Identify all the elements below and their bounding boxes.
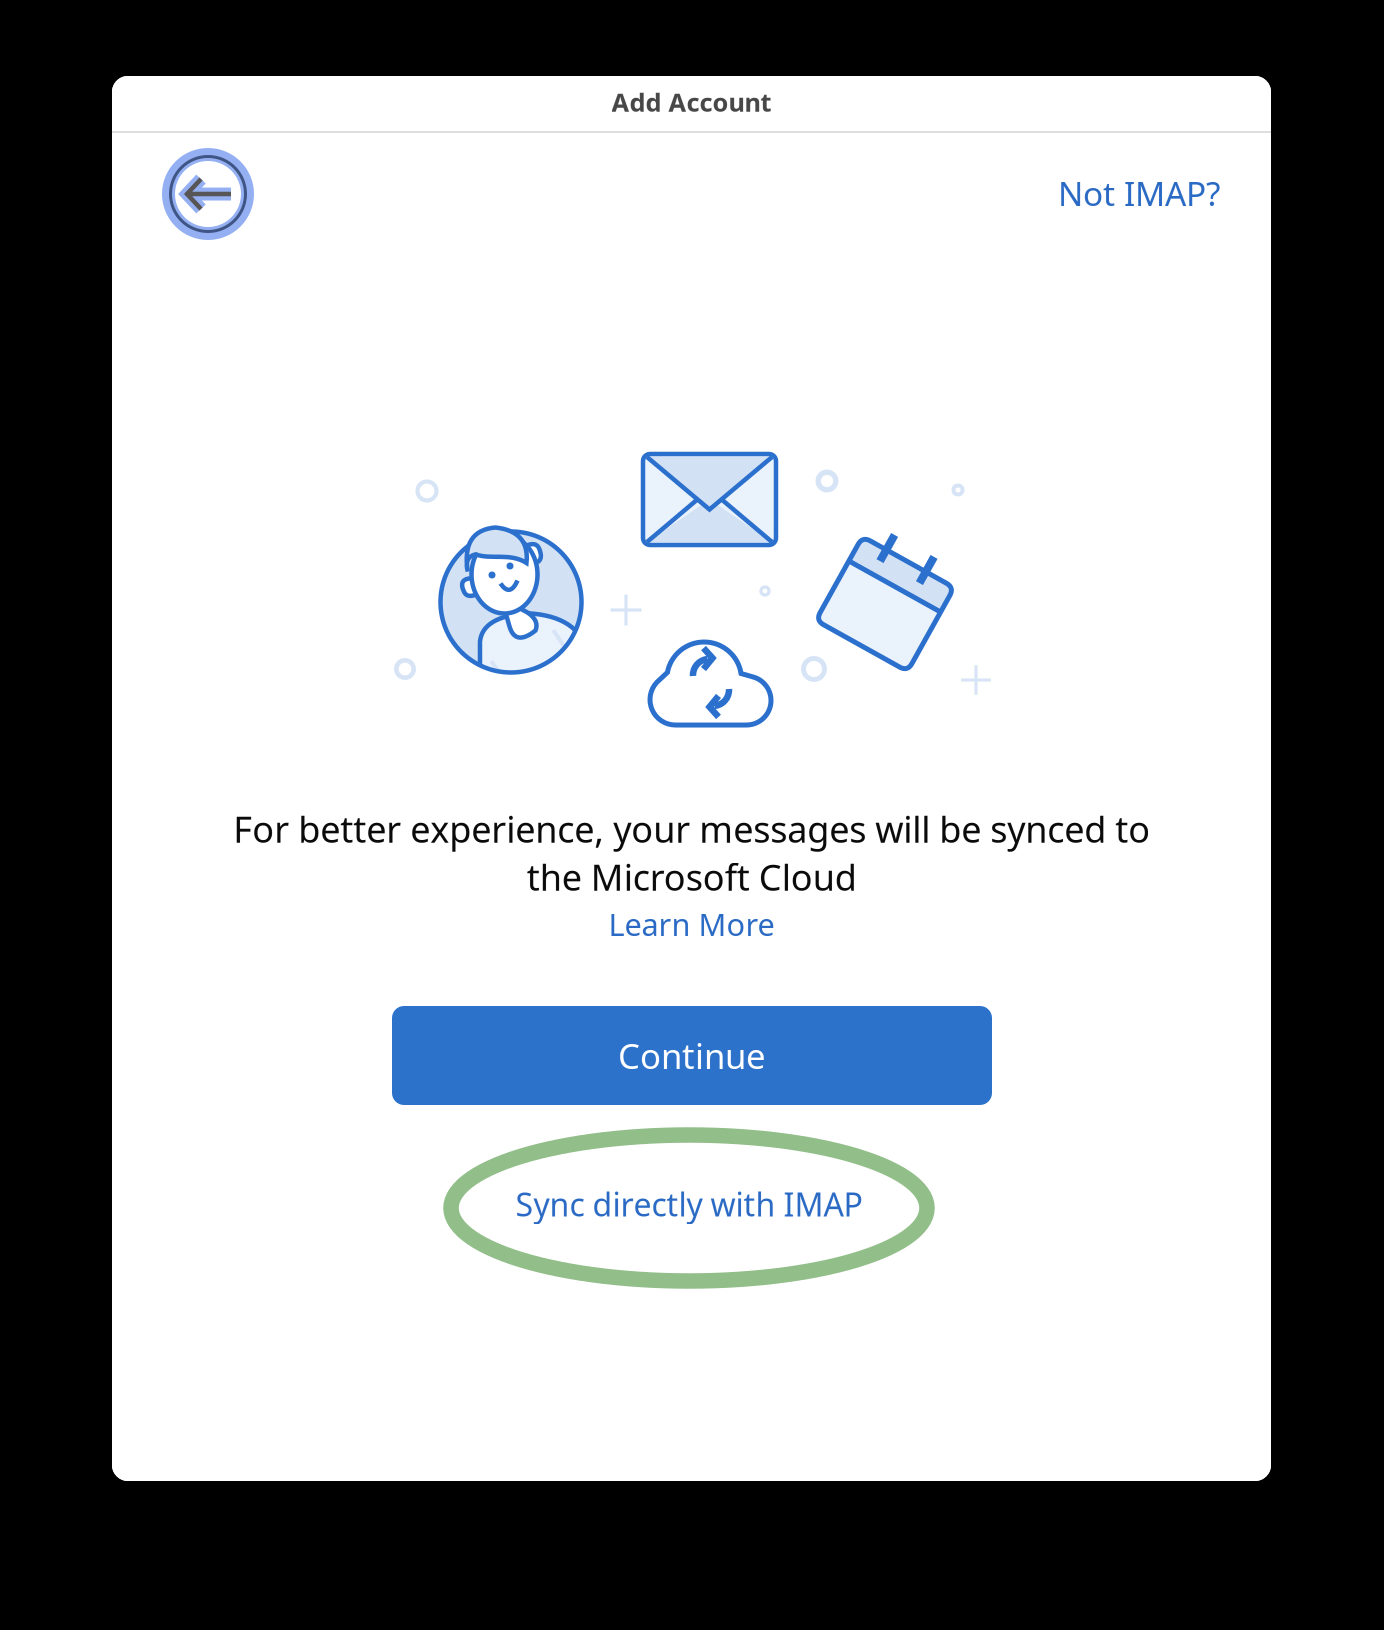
staticText: Continue [618, 1032, 766, 1078]
staticText: Sync directly with IMAP [515, 1183, 862, 1225]
staticText: Learn More [608, 904, 774, 944]
button[interactable]: Continue [392, 1006, 992, 1105]
staticText: Not IMAP? [1058, 171, 1220, 215]
button[interactable]: Not IMAP? [920, 161, 1220, 225]
button[interactable]: Learn More [491, 901, 891, 947]
button[interactable]: Back [158, 144, 258, 244]
staticText: Add Account [611, 85, 771, 119]
button[interactable]: Sync directly with IMAP [451, 1131, 927, 1277]
staticText: For better experience, your messages wil… [233, 805, 1150, 901]
